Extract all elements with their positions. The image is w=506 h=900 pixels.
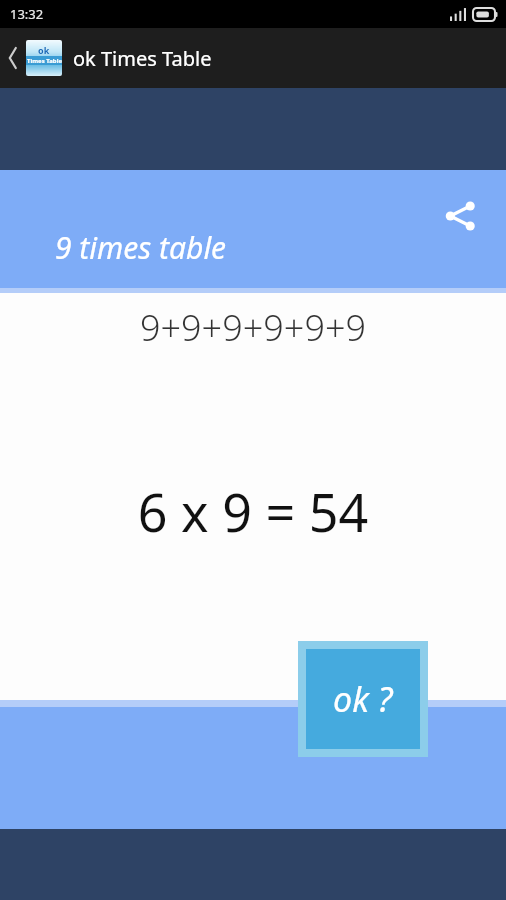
staticText: 9 times table xyxy=(55,227,227,268)
staticText: Times Table xyxy=(27,57,62,65)
button[interactable]: Share xyxy=(436,192,484,240)
staticText: ok Times Table xyxy=(73,45,212,72)
staticText: ok ? xyxy=(333,676,393,722)
button[interactable]: Back xyxy=(0,28,26,88)
staticText: 6 x 9 = 54 xyxy=(0,476,506,547)
button[interactable]: ok ? xyxy=(306,649,420,749)
staticText: ok xyxy=(38,44,50,56)
staticText: 9+9+9+9+9+9 xyxy=(0,303,506,352)
staticText: 13:32 xyxy=(10,5,44,23)
